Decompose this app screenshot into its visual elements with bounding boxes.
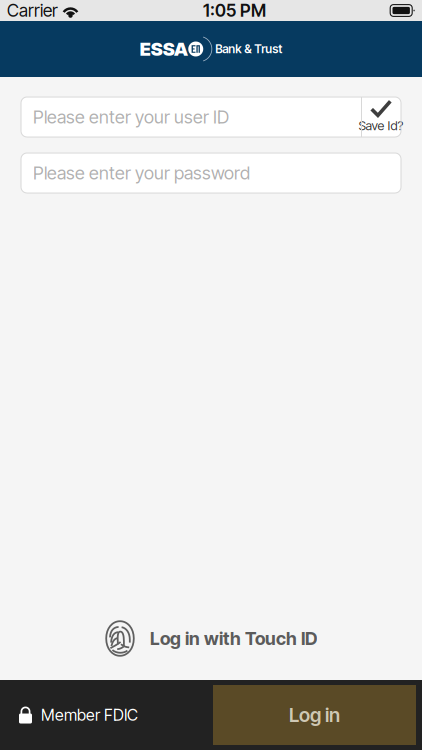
staticText: Please enter your user ID [33,106,229,128]
staticText: 1:05 PM [203,0,266,21]
staticText: Save Id? [358,118,403,133]
staticText: Log in with Touch ID [150,628,317,649]
button[interactable]: Log in [213,685,416,745]
button[interactable]: Save Id [361,97,401,137]
staticText: Log in [289,703,340,727]
staticText: ESSA [140,38,188,60]
staticText: Bank & Trust [215,42,282,56]
staticText: Carrier [7,0,58,21]
button[interactable]: Log in with Touch ID [105,614,317,663]
staticText: Member FDIC [41,705,138,725]
staticText: Please enter your password [33,162,250,184]
